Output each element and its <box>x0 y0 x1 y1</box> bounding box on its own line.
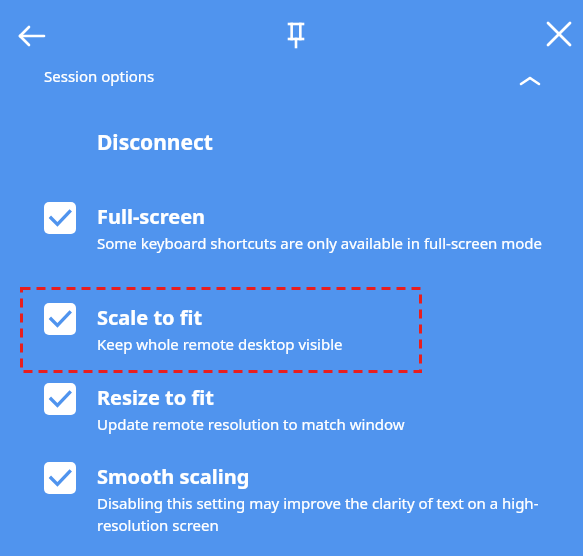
staticText: Update remote resolution to match window <box>97 414 405 434</box>
button[interactable]: Close <box>535 10 583 58</box>
staticText: Full-screen <box>97 203 206 230</box>
button[interactable]: Resize to fit <box>0 374 583 448</box>
button[interactable]: Collapse <box>506 57 554 105</box>
button[interactable]: Full-screen <box>0 190 583 285</box>
button[interactable]: Back <box>8 12 56 60</box>
staticText: Resize to fit <box>97 384 214 411</box>
button[interactable]: Scale to fit <box>0 287 583 373</box>
staticText: Some keyboard shortcuts are only availab… <box>97 233 557 253</box>
staticText: Smooth scaling <box>97 463 250 490</box>
staticText: Session options <box>44 66 155 86</box>
button[interactable]: Disconnect <box>97 128 213 157</box>
staticText: Disabling this setting may improve the c… <box>97 493 557 536</box>
button[interactable]: Smooth scaling <box>0 452 583 547</box>
staticText: Keep whole remote desktop visible <box>97 334 343 354</box>
staticText: Disconnect <box>97 128 213 157</box>
staticText: Scale to fit <box>97 304 203 331</box>
button[interactable]: Pin <box>272 12 320 60</box>
